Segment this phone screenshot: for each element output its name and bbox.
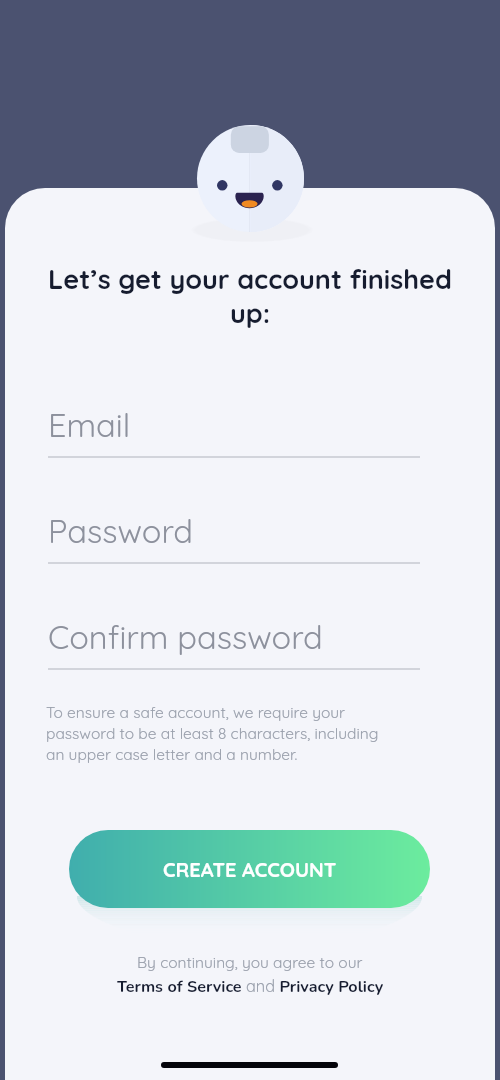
button[interactable]: Confirm password (48, 616, 420, 670)
staticText: Password (48, 510, 193, 551)
staticText: CREATE ACCOUNT (163, 857, 337, 882)
staticText: Email (48, 404, 131, 445)
button[interactable]: Account avatar (197, 125, 304, 232)
staticText: By continuing, you agree to our (137, 952, 363, 971)
staticText: Confirm password (48, 616, 323, 657)
staticText: To ensure a safe account, we require you… (46, 702, 382, 764)
button[interactable]: Terms of Service and Privacy Policy (117, 976, 384, 998)
button[interactable]: Password (48, 510, 420, 564)
button[interactable]: CREATE ACCOUNT (69, 830, 430, 908)
button[interactable]: Email (48, 404, 420, 458)
staticText: Let’s get your account finished up: (44, 262, 456, 330)
